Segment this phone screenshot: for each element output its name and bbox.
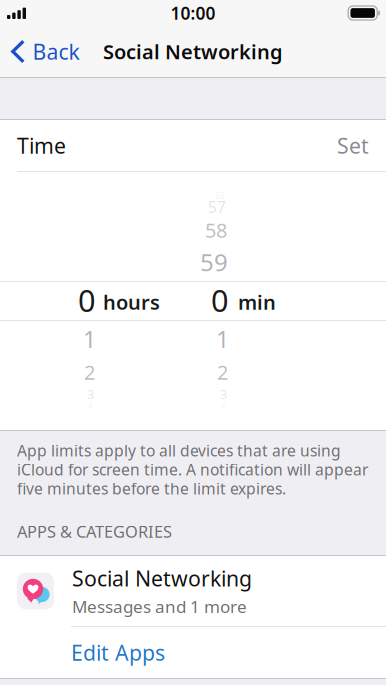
staticText: Time <box>17 131 66 160</box>
staticText: Edit Apps <box>71 638 165 667</box>
staticText: APPS & CATEGORIES <box>17 520 172 543</box>
button[interactable]: Time <box>0 120 386 171</box>
staticText: Social Networking <box>72 564 252 593</box>
staticText: 1 <box>83 323 96 355</box>
staticText: 58 <box>205 216 227 244</box>
staticText: Back <box>32 37 79 66</box>
staticText: 57 <box>208 197 226 217</box>
staticText: hours <box>103 288 160 316</box>
staticText: 2 <box>217 358 228 386</box>
staticText: Set <box>337 131 369 160</box>
staticText: 10:00 <box>170 1 215 25</box>
staticText: 0 <box>78 279 96 321</box>
button[interactable]: Social Networking <box>0 556 386 626</box>
staticText: 1 <box>216 323 229 355</box>
staticText: 4 <box>88 400 92 410</box>
staticText: Messages and 1 more <box>72 595 247 618</box>
staticText: 59 <box>200 246 228 278</box>
button[interactable]: Back <box>0 29 89 73</box>
staticText: 56 <box>215 191 225 201</box>
staticText: 4 <box>221 400 225 410</box>
staticText: five minutes before the limit expires. <box>17 478 286 499</box>
staticText: Social Networking <box>103 38 283 65</box>
staticText: iCloud for screen time. A notification w… <box>17 459 368 480</box>
staticText: min <box>238 288 276 316</box>
staticText: App limits apply to all devices that are… <box>17 440 341 461</box>
staticText: 3 <box>87 385 94 403</box>
button[interactable]: Edit Apps <box>0 627 386 678</box>
staticText: 3 <box>220 385 227 403</box>
staticText: 0 <box>211 279 229 321</box>
staticText: 2 <box>84 358 95 386</box>
